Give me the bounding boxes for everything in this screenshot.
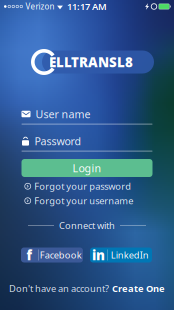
staticText: Login	[72, 161, 101, 175]
button[interactable]: Forgot your password	[25, 181, 131, 191]
staticText: f	[26, 246, 32, 264]
staticText: 8	[125, 53, 133, 71]
staticText: ELLTRANSL	[49, 53, 125, 71]
staticText: Forgot your username	[34, 195, 133, 207]
staticText: Verizon	[25, 1, 54, 12]
button[interactable]: Forgot your username	[25, 196, 133, 206]
staticText: in	[92, 246, 105, 264]
staticText: 11:17 AM	[67, 0, 107, 13]
staticText: Create One	[112, 282, 165, 295]
staticText: Don't have an account?	[9, 282, 109, 295]
button[interactable]: Login	[21, 159, 152, 177]
staticText: Forgot your password	[34, 180, 131, 192]
staticText: Facebook	[40, 249, 82, 261]
staticText: Connect with	[59, 219, 115, 232]
button[interactable]: in	[90, 247, 152, 262]
button[interactable]: f	[21, 247, 83, 262]
staticText: Password	[34, 134, 81, 148]
staticText: User name	[35, 107, 90, 121]
button[interactable]: Don't have an account?	[9, 282, 165, 294]
staticText: LinkedIn	[111, 249, 149, 261]
